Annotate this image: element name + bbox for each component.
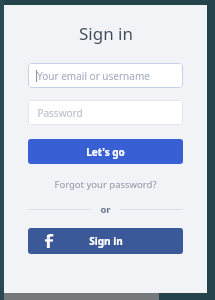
staticText: Password: [37, 106, 83, 120]
button[interactable]: Let's go: [28, 139, 183, 164]
staticText: or: [100, 203, 111, 216]
other: Facebook: [41, 234, 55, 248]
staticText: Your email or username: [37, 69, 150, 83]
staticText: Sign in: [79, 22, 133, 45]
button[interactable]: Forgot your password?: [48, 176, 163, 193]
staticText: Forgot your password?: [54, 178, 157, 191]
button[interactable]: Password: [28, 100, 183, 125]
staticText: Sign in: [89, 234, 123, 248]
staticText: Let's go: [86, 145, 125, 159]
button[interactable]: Facebook: [28, 228, 183, 254]
button[interactable]: Your email or username: [28, 63, 183, 88]
